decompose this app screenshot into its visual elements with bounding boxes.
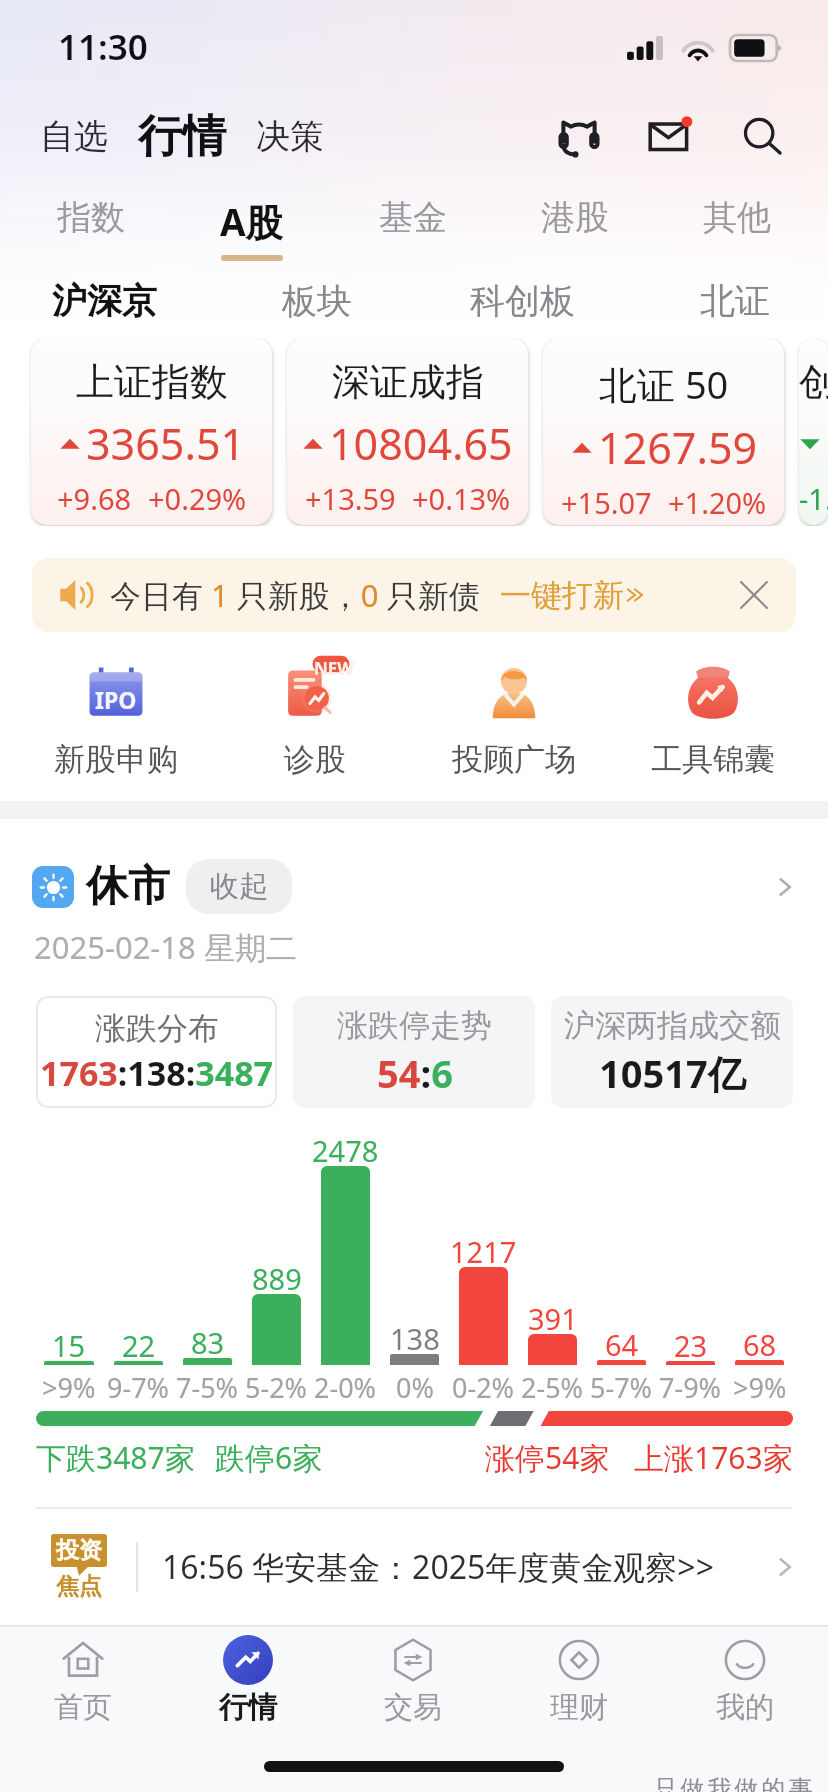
staticText: +1.20% (668, 483, 767, 522)
staticText: 下跌3487家 (36, 1437, 195, 1478)
staticText: 2-0% (314, 1369, 377, 1406)
staticText: 创业板指 (799, 358, 828, 406)
staticText: 首页 (54, 1689, 112, 1726)
button[interactable]: 投顾广场 (414, 652, 613, 779)
staticText: 0-2% (452, 1369, 515, 1406)
staticText: 2-5% (521, 1369, 584, 1406)
staticText: 3365.51 (86, 414, 246, 473)
staticText: 涨跌分布 (95, 1009, 219, 1048)
staticText: 今日有 1 只新股，0 只新债 (110, 574, 480, 616)
button[interactable]: 行情 (165, 1627, 330, 1745)
button[interactable]: 沪深两指成交额 (551, 996, 793, 1108)
button[interactable]: 行情 (134, 107, 230, 166)
button[interactable]: 港股 (494, 184, 656, 264)
staticText: 138 (390, 1319, 440, 1358)
staticText: 1763:138:3487 (40, 1050, 274, 1096)
staticText: 北证 (700, 279, 770, 323)
button[interactable]: 理财 (496, 1627, 662, 1745)
staticText: 一键打新 (500, 576, 624, 615)
staticText: NEW (314, 657, 354, 680)
button[interactable]: 沪深京 (46, 269, 163, 333)
staticText: 7-5% (176, 1369, 239, 1406)
button[interactable]: 自选 (36, 107, 112, 166)
staticText: 7-9% (659, 1369, 722, 1406)
staticText: 自选 (40, 115, 108, 158)
staticText: 上证指数 (76, 358, 228, 406)
staticText: 0% (396, 1369, 434, 1406)
staticText: 391 (528, 1299, 578, 1338)
staticText: >9% (42, 1369, 96, 1406)
button[interactable]: 首页 (0, 1627, 165, 1745)
button[interactable]: 休市 (32, 859, 796, 914)
button[interactable]: 今日有 1 只新股，0 只新债 (32, 558, 796, 632)
button[interactable]: IPO (16, 652, 215, 779)
staticText: +0.29% (148, 479, 247, 518)
staticText: 其他 (703, 196, 771, 239)
staticText: -1.98 (799, 479, 828, 518)
button[interactable]: Messages (644, 109, 698, 163)
staticText: 涨跌停走势 (337, 1006, 492, 1045)
staticText: +9.68 (57, 479, 132, 518)
button[interactable]: 其他 (656, 184, 818, 264)
button[interactable]: Search (736, 109, 790, 163)
staticText: 决策 (256, 115, 324, 158)
button[interactable]: 涨跌分布 (36, 996, 277, 1108)
staticText: 沪深京 (52, 279, 157, 323)
button[interactable]: 北证 (694, 269, 776, 333)
button[interactable]: 板块 (276, 269, 358, 333)
button[interactable]: 收起 (186, 859, 292, 914)
staticText: 5-2% (245, 1369, 308, 1406)
staticText: IPO (95, 684, 137, 715)
button[interactable]: 基金 (332, 184, 494, 264)
button[interactable]: NEW (215, 652, 414, 779)
staticText: 9-7% (107, 1369, 170, 1406)
button[interactable]: 交易 (330, 1627, 496, 1745)
staticText: 10517亿 (599, 1047, 746, 1099)
button[interactable]: 北证 50 (543, 338, 784, 525)
staticText: 68 (743, 1325, 777, 1364)
staticText: 23 (674, 1326, 708, 1365)
staticText: >9% (733, 1369, 787, 1406)
staticText: 889 (252, 1259, 302, 1298)
staticText: 投资 (56, 1536, 102, 1565)
button[interactable]: 深证成指 (287, 338, 528, 525)
button[interactable]: Customer service (552, 109, 606, 163)
staticText: 焦点 (56, 1572, 102, 1601)
staticText: 15 (52, 1326, 86, 1365)
staticText: 沪深两指成交额 (564, 1006, 781, 1045)
staticText: 涨停54家 (485, 1437, 610, 1478)
staticText: 诊股 (284, 740, 346, 779)
staticText: 16:56 华安基金：2025年度黄金观察>> (162, 1545, 714, 1589)
staticText: 指数 (57, 196, 125, 239)
staticText: 我的 (716, 1689, 774, 1726)
staticText: 港股 (541, 196, 609, 239)
staticText: 2478 (312, 1131, 379, 1170)
staticText: 行情 (219, 1689, 277, 1726)
button[interactable]: 投资 (0, 1509, 828, 1625)
button[interactable]: 涨跌停走势 (293, 996, 535, 1108)
button[interactable]: 上证指数 (31, 338, 272, 525)
button[interactable]: A股 (171, 184, 332, 264)
button[interactable]: Close (732, 573, 776, 617)
staticText: 上涨1763家 (634, 1437, 793, 1478)
staticText: 深证成指 (332, 358, 484, 406)
staticText: 投顾广场 (452, 740, 576, 779)
staticText: 跌停6家 (215, 1437, 323, 1478)
button[interactable]: 决策 (252, 107, 328, 166)
staticText: 板块 (282, 279, 352, 323)
staticText: 22 (122, 1326, 156, 1365)
button[interactable]: 创业板指 (799, 338, 828, 525)
button[interactable]: 我的 (662, 1627, 828, 1745)
staticText: +13.59 (305, 479, 396, 518)
staticText: 只做我做的事 (652, 1774, 814, 1792)
button[interactable]: 指数 (10, 184, 171, 264)
button[interactable]: 工具锦囊 (613, 652, 812, 779)
staticText: 科创板 (470, 279, 575, 323)
staticText: 1267.59 (598, 418, 758, 477)
staticText: 休市 (86, 860, 170, 913)
button[interactable]: 科创板 (464, 269, 581, 333)
staticText: 新股申购 (54, 740, 178, 779)
staticText: 64 (605, 1325, 639, 1364)
staticText: 交易 (384, 1689, 442, 1726)
staticText: 11:30 (58, 23, 148, 71)
